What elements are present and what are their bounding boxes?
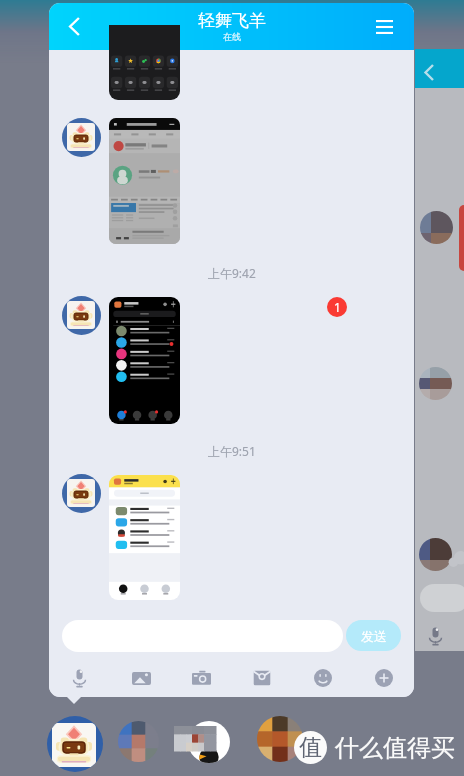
button[interactable]: QQ: [47, 716, 103, 772]
staticText: 发送: [361, 628, 387, 644]
button[interactable]: Avatar: [62, 296, 101, 335]
button[interactable]: Back: [415, 49, 464, 88]
button[interactable]: Send image: [125, 662, 157, 694]
button[interactable]: Voice message: [63, 662, 95, 694]
button[interactable]: Emoji: [307, 662, 339, 694]
button[interactable]: 1: [327, 297, 347, 317]
button[interactable]: 发送: [346, 620, 401, 651]
button[interactable]: Avatar: [62, 118, 101, 157]
button[interactable]: Camera: [185, 662, 217, 694]
staticText: 上午9:42: [208, 265, 256, 281]
button[interactable]: Red packet: [246, 662, 278, 694]
staticText: 值: [299, 733, 322, 762]
button[interactable]: Avatar: [62, 474, 101, 513]
button[interactable]: More: [368, 662, 400, 694]
staticText: 轻舞飞羊: [198, 10, 266, 31]
button[interactable]: Back: [57, 9, 91, 43]
staticText: 上午9:51: [208, 443, 256, 459]
button[interactable]: Message input: [62, 620, 343, 652]
staticText: 1: [334, 299, 341, 315]
staticText: 什么值得买: [335, 733, 455, 763]
button[interactable]: Menu: [367, 10, 401, 44]
staticText: 在线: [223, 31, 241, 42]
